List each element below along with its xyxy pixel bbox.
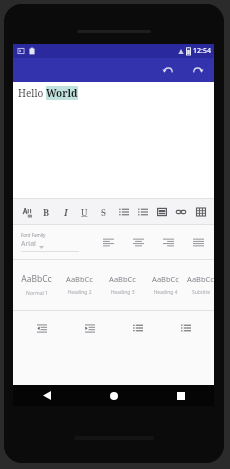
button[interactable]: Font Family	[21, 232, 79, 252]
button[interactable]: Align left	[99, 231, 118, 253]
button[interactable]: Insert table	[192, 201, 209, 222]
staticText: AaBbCc	[152, 274, 179, 284]
button[interactable]: Redo	[188, 60, 208, 80]
staticText: Heading 3	[110, 289, 135, 296]
staticText: U	[81, 206, 88, 218]
staticText: Hello	[18, 86, 46, 100]
button[interactable]: AaBbCc	[101, 260, 144, 310]
staticText: Font Family	[21, 232, 46, 238]
button[interactable]: Back	[13, 385, 80, 406]
button[interactable]: U	[76, 201, 93, 222]
staticText: World	[46, 86, 78, 100]
button[interactable]: AaBbCc	[187, 260, 214, 310]
button[interactable]: Decrease indent	[33, 317, 50, 338]
staticText: Subtitle	[192, 289, 210, 296]
button[interactable]: AaBbCc	[15, 260, 58, 310]
staticText: 12:54	[193, 46, 211, 56]
button[interactable]: I	[57, 201, 74, 222]
button[interactable]: B	[38, 201, 55, 222]
staticText: Arial	[21, 239, 36, 249]
staticText: Heading 2	[67, 289, 92, 296]
button[interactable]: Bulleted list style	[129, 317, 146, 338]
staticText: I	[64, 206, 68, 218]
button[interactable]: Justify	[189, 231, 208, 253]
button[interactable]: Align right	[159, 231, 178, 253]
staticText: AaBbCc	[66, 274, 93, 284]
button[interactable]: Numbered list style	[177, 317, 194, 338]
staticText: B	[43, 206, 50, 218]
button[interactable]: Bulleted list	[115, 201, 132, 222]
button[interactable]: AaBbCc	[58, 260, 101, 310]
button[interactable]: Home	[80, 385, 147, 406]
button[interactable]: AaBbCc	[144, 260, 187, 310]
staticText: AaBbCc	[109, 274, 136, 284]
button[interactable]: Align center	[129, 231, 148, 253]
button[interactable]: Undo	[158, 60, 178, 80]
staticText: Normal 1	[26, 290, 48, 297]
button[interactable]: Insert link	[172, 201, 189, 222]
button[interactable]: S	[95, 201, 112, 222]
staticText: S	[101, 206, 106, 218]
staticText: AaBbCc	[21, 273, 52, 285]
staticText: Heading 4	[153, 289, 178, 296]
staticText: AaBbCc	[187, 274, 214, 284]
button[interactable]: Numbered list	[134, 201, 151, 222]
button[interactable]: Text style	[18, 201, 35, 222]
button[interactable]: Insert image	[153, 201, 170, 222]
button[interactable]: Recent apps	[147, 385, 214, 406]
button[interactable]: Increase indent	[81, 317, 98, 338]
